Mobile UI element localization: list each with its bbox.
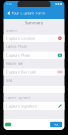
staticText: Your Custom Form [11,10,45,16]
staticText: Total [6,79,12,82]
staticText: Next [54,123,59,126]
button[interactable]: Capture Photo [3,51,64,59]
staticText: Capture Photo [6,45,27,48]
staticText: Capture Signature [6,96,31,99]
button[interactable]: Save [5,123,11,126]
button[interactable]: Capture Signature [3,102,64,110]
staticText: Capture Photo [6,53,30,58]
button[interactable]: Capture Barcode [3,68,64,75]
staticText: Summary [25,20,43,25]
staticText: Capture Barcode [6,69,36,75]
staticText: Capture Signature [6,103,37,109]
button[interactable]: Capture Location [3,34,64,42]
staticText: Location [6,29,17,32]
staticText: Barcode Scan [6,62,23,65]
staticText: Capture Location [6,36,35,41]
button[interactable]: Next [50,122,62,127]
staticText: 9:41 [6,2,13,6]
button[interactable]: Back [3,7,11,19]
